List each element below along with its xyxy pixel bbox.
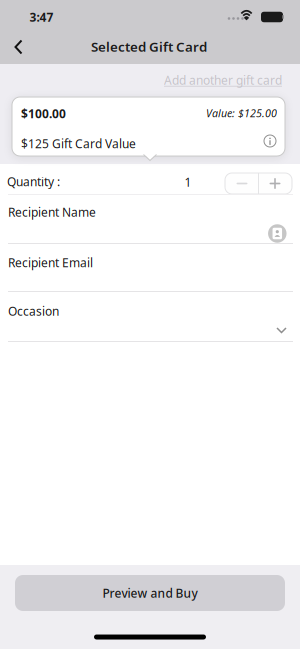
staticText: Add another gift card bbox=[164, 72, 282, 88]
button[interactable]: Gift card info bbox=[263, 134, 277, 148]
staticText: Preview and Buy bbox=[102, 585, 197, 601]
button[interactable]: Increase quantity bbox=[259, 173, 291, 193]
button[interactable]: Decrease quantity bbox=[226, 173, 258, 193]
button[interactable]: Select occasion bbox=[273, 325, 289, 337]
staticText: $125 Gift Card Value bbox=[21, 135, 136, 151]
staticText: $100.00 bbox=[21, 105, 66, 121]
staticText: 1 bbox=[184, 174, 191, 190]
staticText: Quantity : bbox=[7, 173, 60, 189]
staticText: Recipient Name bbox=[8, 204, 96, 220]
staticText: 3:47 bbox=[29, 9, 53, 25]
staticText: Selected Gift Card bbox=[91, 38, 207, 55]
staticText: Value: $125.00 bbox=[206, 106, 277, 120]
staticText: Occasion bbox=[8, 303, 59, 319]
button[interactable]: Back bbox=[7, 35, 31, 59]
staticText: Recipient Email bbox=[8, 254, 93, 270]
button[interactable]: Add another gift card bbox=[142, 72, 282, 88]
button[interactable]: Choose contact bbox=[268, 224, 286, 242]
button[interactable]: Preview and Buy bbox=[15, 575, 285, 611]
